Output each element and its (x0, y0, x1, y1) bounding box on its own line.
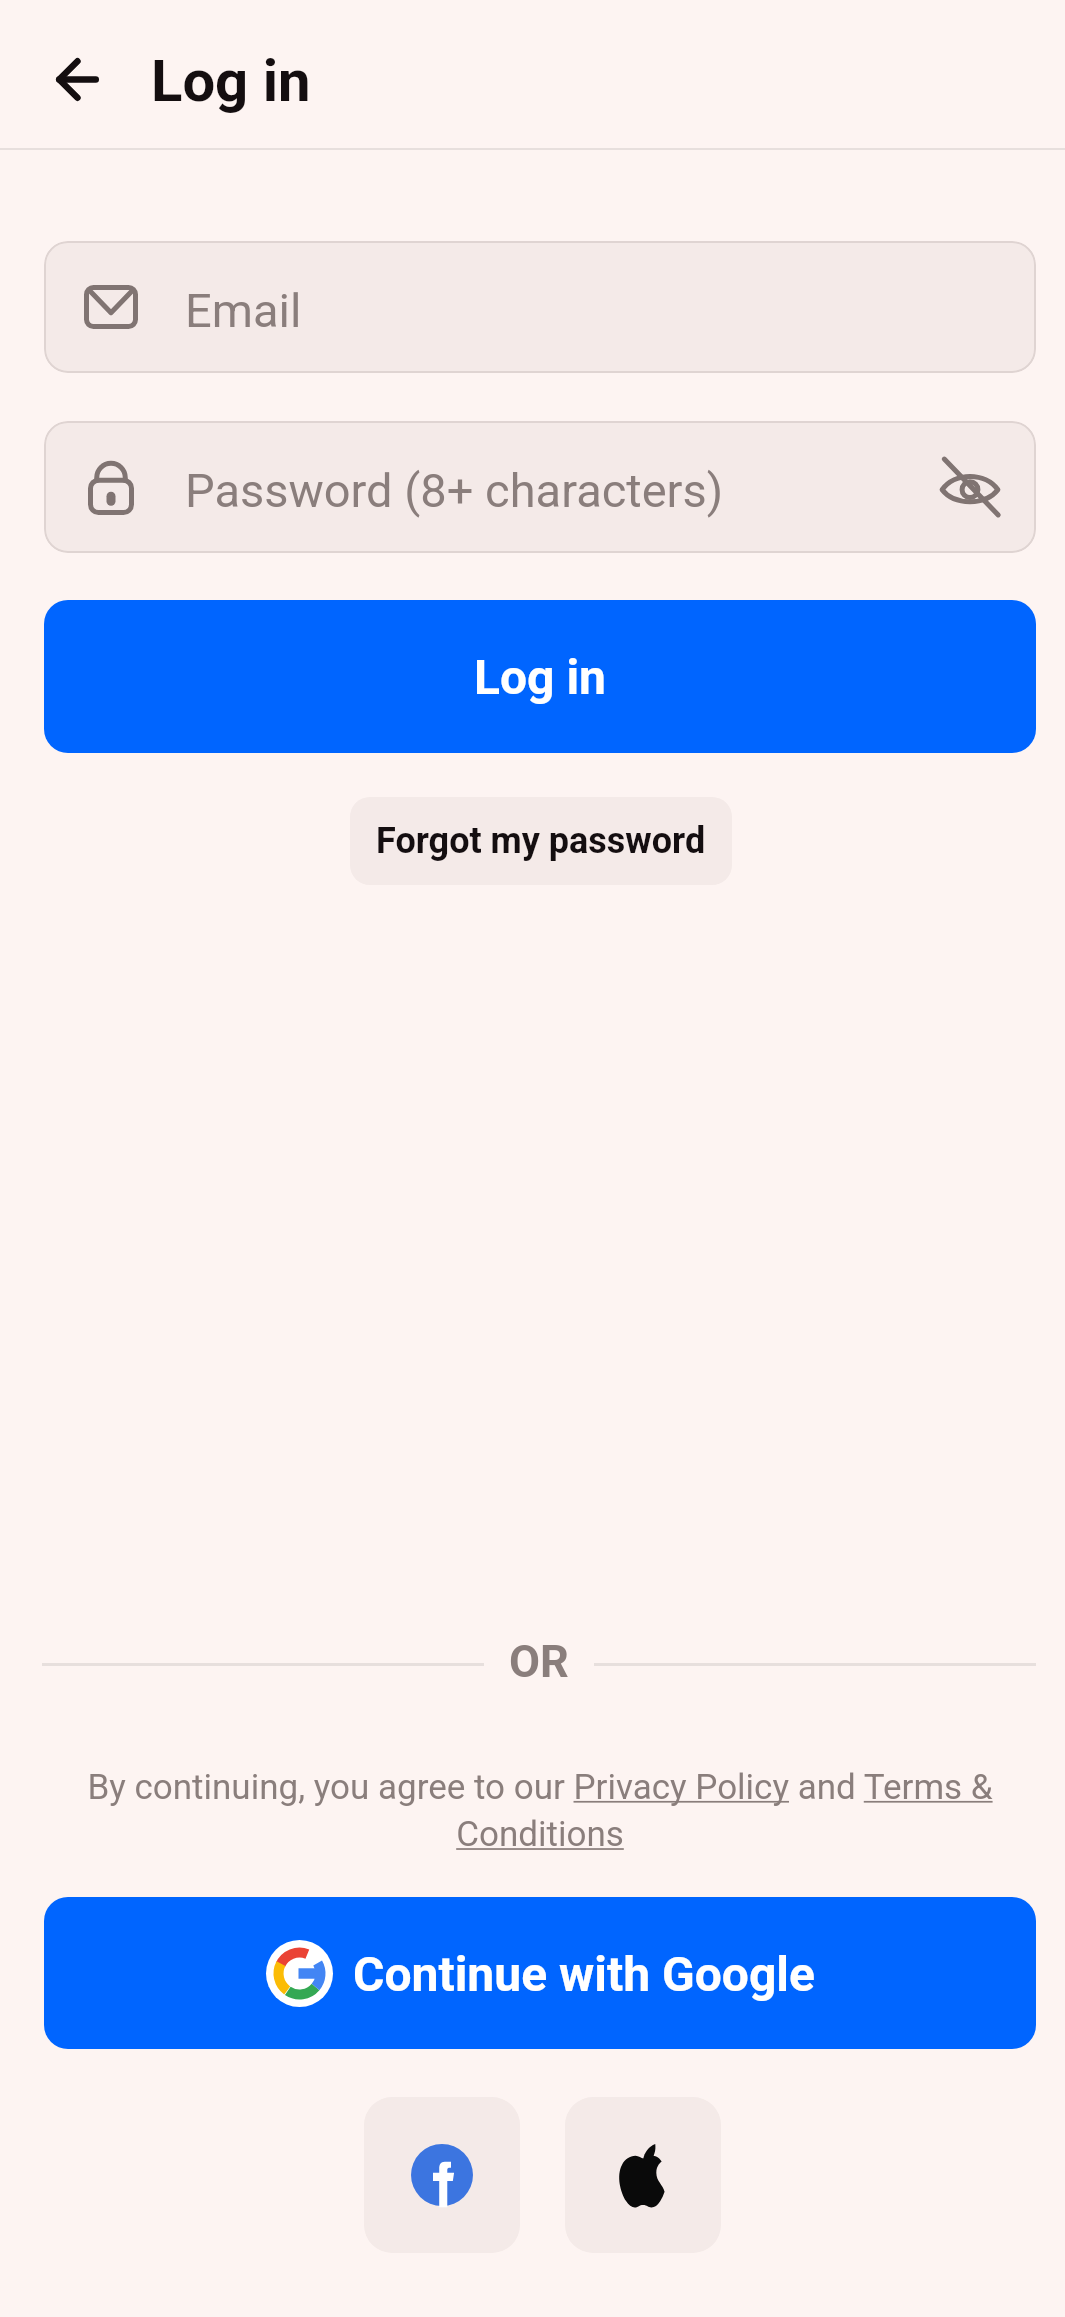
button[interactable]: Back (33, 35, 121, 123)
staticText: Forgot my password (376, 820, 706, 862)
button[interactable]: Continue with Apple (565, 2097, 721, 2253)
staticText: Log in (474, 649, 607, 705)
button[interactable]: Log in (44, 600, 1036, 753)
button[interactable]: Continue with Google (44, 1897, 1036, 2049)
staticText: OR (509, 1635, 569, 1688)
button[interactable]: Email (44, 241, 1036, 373)
staticText: By continuing, you agree to our Privacy … (79, 1767, 1001, 1855)
button[interactable]: Continue with Facebook (364, 2097, 520, 2253)
staticText: Email (185, 283, 1036, 338)
button[interactable]: Forgot my password (350, 797, 732, 885)
staticText: Continue with Google (353, 1946, 815, 2002)
staticText: Log in (151, 47, 311, 115)
button[interactable]: Password (8+ characters) (44, 421, 1036, 553)
staticText: Password (8+ characters) (185, 463, 938, 518)
